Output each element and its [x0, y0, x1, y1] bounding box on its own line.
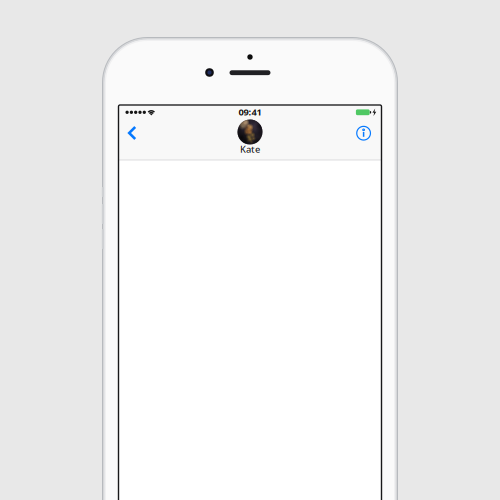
- staticText: Kate: [240, 143, 260, 155]
- button[interactable]: Details: [346, 113, 382, 153]
- button[interactable]: Kate: [226, 107, 274, 156]
- staticText: 09:41: [238, 106, 261, 118]
- button[interactable]: Back: [114, 113, 150, 153]
